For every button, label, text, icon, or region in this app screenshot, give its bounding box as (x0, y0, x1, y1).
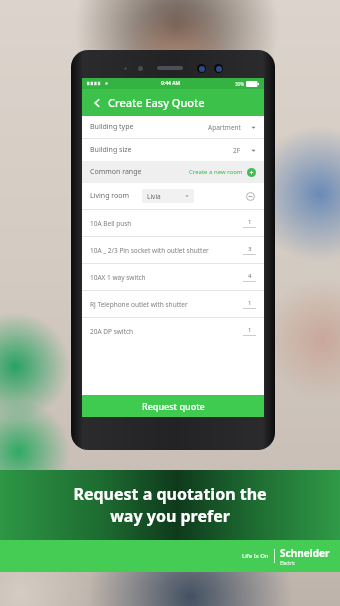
staticText: 9:44 AM (161, 80, 181, 87)
staticText: Life Is On (242, 552, 269, 560)
staticText: 1 (248, 326, 252, 334)
staticText: 2F (233, 146, 241, 155)
button[interactable]: 10A Bell push (82, 210, 264, 236)
button[interactable]: RJ Telephone outlet with shutter (82, 291, 264, 317)
staticText: 30% (235, 81, 244, 87)
button[interactable]: Livia (142, 189, 194, 203)
staticText: 20A DP switch (90, 327, 134, 336)
button[interactable]: 10AX 1 way switch (82, 264, 264, 290)
button[interactable]: 10A _ 2/3 Pin socket with outlet shutter (82, 237, 264, 263)
staticText: Electric (280, 560, 296, 566)
staticText: 1 (248, 218, 252, 226)
staticText: RJ Telephone outlet with shutter (90, 300, 188, 309)
staticText: Living room (90, 191, 130, 201)
staticText: Livia (147, 192, 161, 201)
staticText: Building size (90, 145, 132, 155)
staticText: Schneider (280, 546, 330, 560)
button[interactable]: Common range (82, 161, 264, 183)
staticText: Create a new room (189, 168, 243, 176)
button[interactable]: Building type (82, 116, 264, 138)
staticText: Apartment (208, 123, 241, 132)
staticText: 10A _ 2/3 Pin socket with outlet shutter (90, 246, 209, 255)
staticText: Create Easy Quote (108, 95, 205, 110)
button[interactable]: Building size (82, 139, 264, 161)
button[interactable]: 20A DP switch (82, 318, 264, 344)
button[interactable]: Remove room (245, 191, 256, 202)
button[interactable]: Request quote (82, 395, 264, 417)
staticText: Common range (90, 167, 142, 177)
staticText: Request quote (142, 400, 205, 412)
button[interactable]: Back (89, 95, 105, 111)
staticText: 10AX 1 way switch (90, 273, 146, 282)
staticText: 10A Bell push (90, 219, 132, 228)
staticText: 4 (248, 272, 252, 280)
staticText: 1 (248, 299, 252, 307)
staticText: Building type (90, 122, 134, 132)
staticText: Request a quotation the way you prefer (73, 483, 267, 527)
staticText: 3 (248, 245, 252, 253)
